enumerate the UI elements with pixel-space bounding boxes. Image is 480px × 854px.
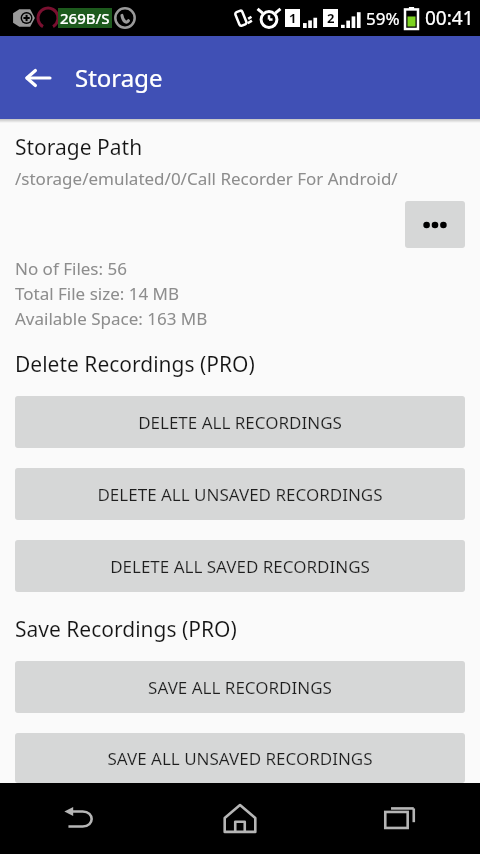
staticText: Save Recordings (PRO) bbox=[15, 615, 237, 644]
staticText: Total File size: 14 MB bbox=[15, 282, 180, 305]
staticText: DELETE ALL SAVED RECORDINGS bbox=[110, 555, 370, 578]
staticText: 2 bbox=[327, 9, 335, 27]
button[interactable]: Back bbox=[0, 783, 160, 854]
staticText: SAVE ALL UNSAVED RECORDINGS bbox=[107, 747, 373, 770]
staticText: DELETE ALL UNSAVED RECORDINGS bbox=[97, 483, 383, 506]
staticText: /storage/emulated/0/Call Recorder For An… bbox=[15, 167, 398, 190]
button[interactable]: DELETE ALL SAVED RECORDINGS bbox=[15, 540, 465, 592]
staticText: 00:41 bbox=[425, 5, 474, 31]
staticText: Available Space: 163 MB bbox=[15, 307, 208, 330]
button[interactable]: DELETE ALL UNSAVED RECORDINGS bbox=[15, 468, 465, 520]
button[interactable]: Navigate up bbox=[10, 50, 66, 106]
staticText: Delete Recordings (PRO) bbox=[15, 350, 255, 379]
staticText: 59% bbox=[366, 7, 400, 30]
button[interactable]: SAVE ALL UNSAVED RECORDINGS bbox=[15, 733, 465, 783]
button[interactable]: DELETE ALL RECORDINGS bbox=[15, 396, 465, 448]
button[interactable]: Home bbox=[160, 783, 320, 854]
button[interactable]: SAVE ALL RECORDINGS bbox=[15, 661, 465, 713]
staticText: Storage bbox=[75, 61, 163, 94]
staticText: 269B/S bbox=[60, 8, 110, 28]
staticText: SAVE ALL RECORDINGS bbox=[148, 676, 332, 699]
staticText: 1 bbox=[289, 9, 297, 27]
button[interactable]: Recent apps bbox=[320, 783, 480, 854]
staticText: DELETE ALL RECORDINGS bbox=[138, 411, 342, 434]
button[interactable]: Change storage path bbox=[405, 201, 465, 248]
staticText: Storage Path bbox=[15, 133, 143, 162]
staticText: No of Files: 56 bbox=[15, 257, 127, 280]
